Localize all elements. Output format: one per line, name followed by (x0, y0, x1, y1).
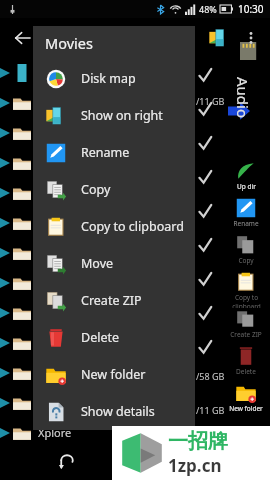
button[interactable]: Rename (222, 197, 270, 234)
staticText: Disk map (81, 70, 136, 87)
button[interactable]: Move (33, 245, 195, 282)
button[interactable] (196, 160, 240, 194)
button[interactable]: Copy to clipboard (222, 271, 270, 308)
button[interactable]: Create ZIP (222, 308, 270, 345)
button[interactable]: Delete (33, 319, 195, 356)
button[interactable]: Create ZIP (33, 282, 195, 319)
button[interactable]: Show on right (204, 23, 234, 53)
button[interactable]: Copy (222, 234, 270, 271)
button[interactable] (0, 208, 40, 238)
button[interactable]: More options (236, 23, 266, 53)
staticText: /58 GB (196, 370, 225, 382)
staticText: Audio (233, 77, 253, 119)
button[interactable] (0, 418, 40, 448)
staticText: Delete (81, 329, 120, 346)
staticText: Show on right (81, 107, 163, 124)
button[interactable] (0, 118, 40, 148)
button[interactable]: Back (49, 443, 85, 479)
button[interactable] (196, 126, 240, 160)
button[interactable]: Delete (222, 345, 270, 382)
staticText: 1zp.cn (168, 454, 222, 477)
button[interactable] (0, 328, 40, 358)
button[interactable] (0, 148, 40, 178)
staticText: Delete (236, 367, 256, 376)
staticText: New folder (229, 404, 263, 413)
button[interactable] (0, 268, 40, 298)
staticText: Xplore (38, 425, 72, 440)
button[interactable]: Show details (33, 393, 195, 430)
staticText: Rename (81, 144, 130, 161)
staticText: Create ZIP (230, 330, 262, 339)
button[interactable] (0, 58, 40, 88)
staticText: Copy to clipboard (232, 293, 261, 308)
staticText: Copy (238, 256, 254, 265)
button[interactable] (0, 298, 40, 328)
button[interactable] (0, 178, 40, 208)
button[interactable]: New folder (33, 356, 195, 393)
staticText: 一招牌 (168, 429, 228, 454)
staticText: Rename (233, 219, 259, 228)
button[interactable] (0, 88, 40, 118)
staticText: Up dir (237, 182, 256, 191)
staticText: Move (81, 255, 114, 272)
button[interactable]: Home (117, 443, 153, 479)
button[interactable] (196, 228, 240, 262)
button[interactable]: Up dir (222, 160, 270, 197)
button[interactable] (0, 388, 40, 418)
button[interactable] (0, 238, 40, 268)
staticText: Create ZIP (81, 292, 142, 309)
button[interactable]: Copy (33, 171, 195, 208)
staticText: New folder (81, 366, 146, 383)
staticText: /11 GB (196, 95, 225, 107)
button[interactable]: Copy to clipboard (33, 208, 195, 245)
button[interactable]: New folder (222, 382, 270, 419)
button[interactable]: Disk map (33, 60, 195, 97)
button[interactable] (196, 58, 240, 92)
staticText: 48% (199, 3, 217, 15)
button[interactable]: Show on right (33, 97, 195, 134)
button[interactable]: Back (6, 22, 38, 54)
button[interactable] (196, 92, 240, 126)
staticText: 10:30 (238, 2, 264, 16)
button[interactable] (196, 330, 240, 364)
staticText: Copy (81, 181, 111, 198)
staticText: Show details (81, 403, 155, 420)
button[interactable] (0, 358, 40, 388)
button[interactable] (196, 262, 240, 296)
staticText: Copy to clipboard (81, 218, 184, 235)
staticText: /11 GB (196, 404, 225, 416)
button[interactable] (196, 194, 240, 228)
button[interactable]: Rename (33, 134, 195, 171)
button[interactable] (196, 296, 240, 330)
staticText: Movies (45, 33, 93, 53)
